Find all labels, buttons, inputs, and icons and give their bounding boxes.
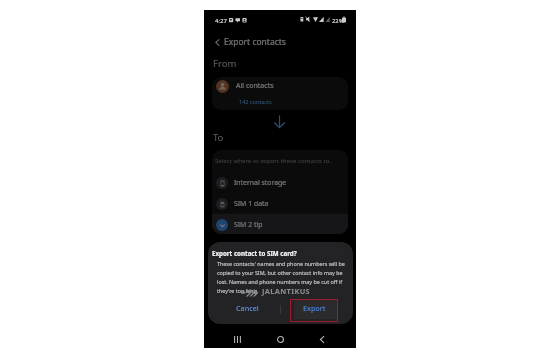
staticText: Select where to export these contacts to… (215, 156, 332, 164)
staticText: Export contact to SIM card? (212, 249, 297, 257)
staticText: SIM 2 tlp (234, 220, 263, 229)
button[interactable]: SIM 1 data (212, 193, 348, 214)
staticText: These contacts' names and phone numbers … (217, 260, 348, 295)
staticText: To (213, 131, 224, 144)
button[interactable]: SIM 2 tlp (212, 214, 348, 234)
staticText: Export (303, 303, 326, 313)
button[interactable]: All contacts (212, 77, 348, 110)
staticText: Export contacts (224, 36, 286, 48)
staticText: All contacts (236, 81, 274, 91)
staticText: SIM 1 data (234, 199, 269, 208)
button[interactable]: Home (269, 328, 291, 350)
staticText: Cancel (236, 303, 259, 313)
button[interactable]: Internal storage (212, 172, 348, 193)
staticText: Internal storage (234, 178, 287, 187)
button[interactable]: Recent apps (226, 328, 248, 350)
button[interactable]: Export (290, 296, 338, 319)
staticText: 142 contacts (239, 98, 272, 105)
staticText: 22% (332, 17, 344, 25)
button[interactable]: Back (311, 328, 333, 350)
button[interactable]: Cancel (223, 296, 271, 319)
button[interactable]: Back (209, 34, 225, 50)
staticText: 4:27 (215, 17, 227, 25)
staticText: JALANTIKUS (262, 286, 311, 296)
staticText: From (213, 57, 237, 70)
